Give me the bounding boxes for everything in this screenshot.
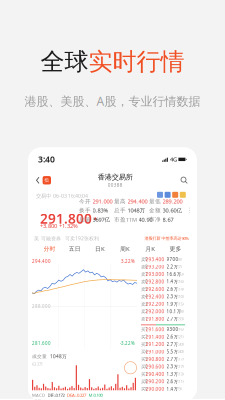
staticText: 0.345 [32, 398, 41, 400]
staticText: 0.83% [92, 207, 108, 214]
staticText: -3.22% [120, 340, 135, 346]
button[interactable]: 月K [138, 244, 163, 254]
staticText: 292.800 [146, 279, 165, 285]
staticText: 买4 [141, 349, 148, 355]
staticText: 港股打新 中签率高达90% [144, 235, 188, 241]
staticText: (17) [177, 356, 183, 362]
staticText: (30) [177, 341, 183, 347]
staticText: 总值 [79, 216, 91, 223]
staticText: 1.4万 [166, 386, 177, 392]
staticText: 288.000 [32, 303, 51, 309]
staticText: 290.600 [146, 364, 165, 370]
button[interactable]: 周K [112, 244, 138, 254]
staticText: (40) [177, 349, 183, 354]
staticText: DEA:-0.227 [67, 392, 86, 398]
staticText: 卖8 [141, 264, 148, 270]
staticText: 63.3万 [32, 361, 43, 367]
staticText: (13) [177, 371, 183, 377]
staticText: (17) [177, 364, 183, 369]
staticText: 291.800 [146, 316, 165, 322]
button[interactable]: Back [34, 171, 53, 189]
staticText: (15) [177, 301, 183, 307]
staticText: 卖6 [141, 279, 148, 285]
staticText: 卖3 [141, 301, 148, 307]
staticText: 1.4万 [166, 279, 177, 285]
staticText: (7) [177, 264, 181, 269]
staticText: 周K [120, 245, 130, 253]
staticText: 市盈TTM [114, 216, 137, 223]
staticText: (8) [177, 256, 181, 262]
staticText: 9300 [166, 326, 178, 332]
staticText: 成交量 [32, 353, 47, 359]
staticText: 卖2 [141, 308, 148, 314]
staticText: 292.600 [146, 286, 165, 292]
staticText: 289.200 [162, 197, 182, 205]
staticText: 291.800 [40, 209, 92, 228]
staticText: +3.800 +1.32% [40, 222, 78, 230]
staticText: 8.67 [162, 216, 173, 223]
staticText: 00388 [108, 182, 123, 188]
staticText: 卖1 [141, 316, 148, 322]
staticText: 实时行情 [88, 47, 184, 77]
staticText: (11) [177, 378, 183, 384]
staticText: 全球 [40, 47, 88, 77]
staticText: 292.200 [146, 301, 165, 307]
staticText: 买9 [141, 386, 148, 392]
staticText: 2.3万 [166, 293, 177, 299]
staticText: 293.200 [146, 264, 165, 270]
staticText: 买8 [141, 378, 148, 384]
staticText: 总手 [114, 207, 126, 214]
staticText: 290.800 [146, 356, 165, 362]
staticText: 1048万 [50, 353, 67, 360]
staticText: 290.200 [146, 378, 165, 385]
staticText: 2.3万 [166, 364, 177, 370]
staticText: 2.2万 [166, 264, 177, 270]
staticText: 5.5万 [166, 349, 177, 355]
staticText: 交易中 06-03 16:40:04 [36, 192, 88, 199]
staticText: 16.6万 [166, 271, 180, 277]
button[interactable]: 日K [87, 244, 112, 254]
staticText: 买6 [141, 364, 148, 370]
staticText: 3.22% [121, 258, 135, 264]
staticText: 香港交易所 [98, 173, 133, 182]
staticText: 2.6万 [166, 286, 177, 292]
button[interactable]: Search [177, 171, 191, 189]
staticText: 290.400 [146, 371, 165, 377]
staticText: 291.000 [146, 349, 165, 355]
staticText: (33) [177, 316, 183, 321]
staticText: (10) [177, 293, 183, 299]
staticText: 2.7万 [166, 341, 177, 347]
staticText: 291.400 [146, 334, 165, 340]
staticText: MACD [32, 392, 45, 398]
staticText: 293.000 [146, 271, 165, 277]
staticText: 3:40 [38, 153, 55, 165]
staticText: 买3 [141, 341, 148, 347]
staticText: (88) [177, 308, 183, 314]
staticText: 卖7 [141, 271, 148, 277]
staticText: 港股、美股、A股，专业行情数据 [24, 93, 200, 109]
staticText: (83) [177, 271, 183, 277]
staticText: 今开 [79, 198, 91, 205]
staticText: (14) [177, 286, 183, 292]
staticText: 10.1万 [166, 308, 180, 314]
staticText: 最高 [114, 198, 126, 205]
staticText: 更多 [169, 245, 181, 252]
staticText: 五日 [69, 245, 81, 252]
staticText: 换手 [79, 207, 91, 214]
button[interactable]: 五日 [62, 244, 87, 254]
button[interactable]: 港股打新 中签率高达90% [142, 235, 191, 242]
staticText: 292.400 [146, 293, 165, 300]
staticText: 1.9万 [166, 301, 177, 307]
staticText: 买5 [141, 356, 148, 362]
staticText: 294.400 [32, 258, 51, 264]
staticText: 卖4 [141, 293, 148, 299]
button[interactable]: 分时 [37, 244, 62, 254]
staticText: 1.3万 [166, 371, 177, 377]
staticText: 9700 [166, 256, 178, 262]
staticText: M:0.100 [88, 392, 102, 398]
staticText: 1048万 [127, 207, 145, 214]
button[interactable]: 更多 [163, 244, 188, 254]
staticText: 291.200 [146, 341, 165, 347]
staticText: 最低 [149, 198, 161, 205]
staticText: (9) [177, 386, 181, 391]
